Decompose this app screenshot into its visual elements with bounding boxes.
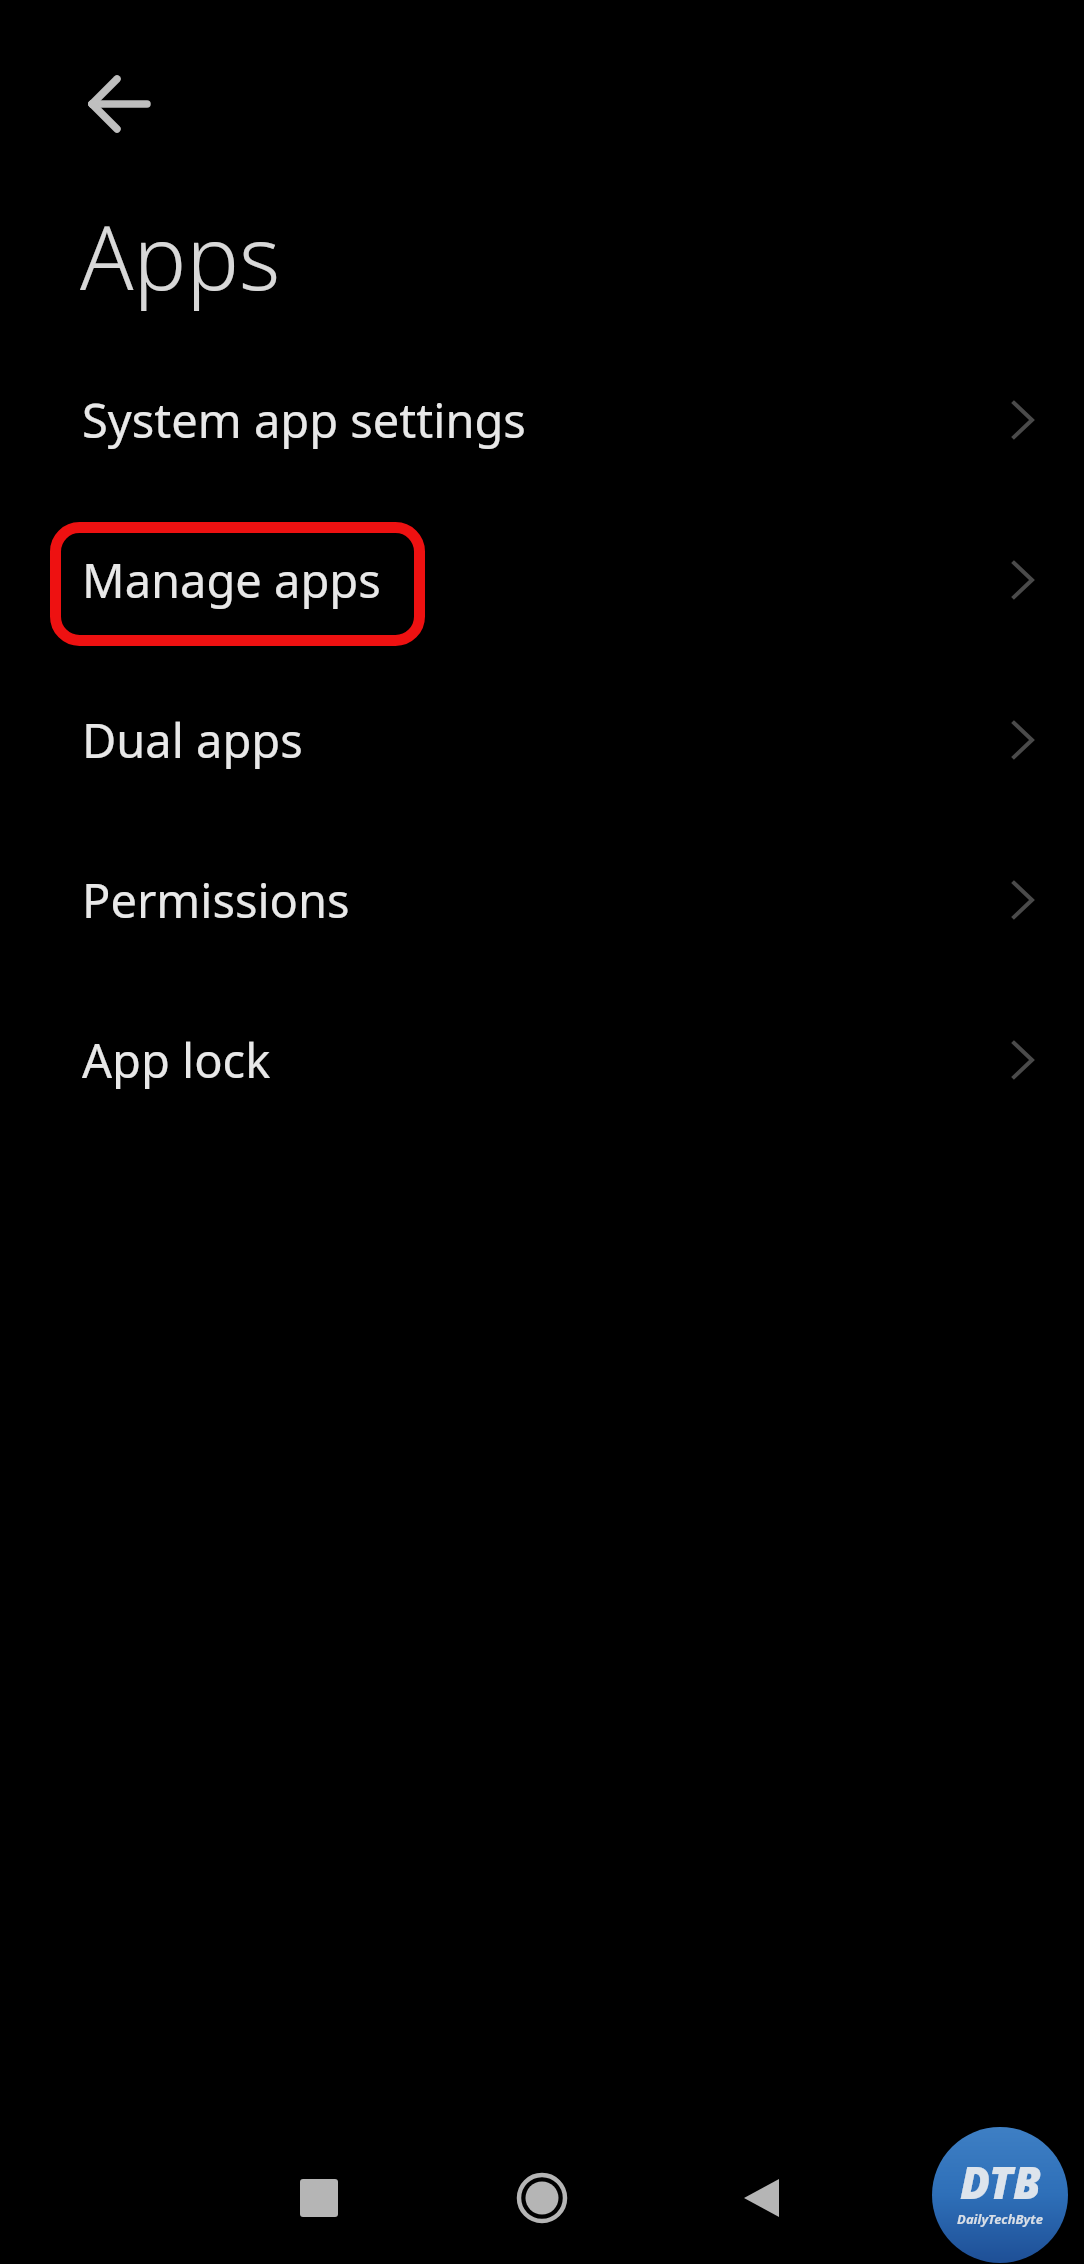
button[interactable]: Recent apps (268, 2148, 370, 2248)
button[interactable]: Back (712, 2148, 812, 2248)
button[interactable]: Manage apps (0, 510, 1084, 650)
staticText: DailyTechByte (957, 2210, 1043, 2228)
staticText: DTB (960, 2152, 1041, 2212)
staticText: Manage apps (82, 548, 381, 612)
staticText: App lock (82, 1028, 271, 1092)
button[interactable]: Back (50, 58, 142, 150)
button[interactable]: System app settings (0, 350, 1084, 490)
staticText: Permissions (82, 868, 350, 932)
button[interactable]: Permissions (0, 830, 1084, 970)
staticText: Dual apps (82, 708, 303, 772)
staticText: System app settings (82, 388, 526, 452)
button[interactable]: Dual apps (0, 670, 1084, 810)
staticText: Apps (80, 196, 281, 316)
button[interactable]: App lock (0, 990, 1084, 1130)
button[interactable]: Home (492, 2148, 592, 2248)
